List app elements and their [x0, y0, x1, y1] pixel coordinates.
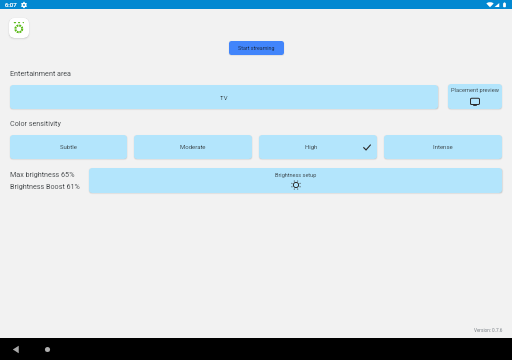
staticText: Color sensitivity: [10, 119, 61, 127]
staticText: Version: 0.7.6: [474, 328, 503, 334]
button[interactable]: Brightness setup: [89, 168, 502, 193]
button[interactable]: Intense: [384, 135, 502, 159]
staticText: Entertainment area: [10, 69, 72, 77]
button[interactable]: TV: [10, 85, 438, 109]
button[interactable]: Back: [11, 345, 20, 354]
staticText: Start streaming: [238, 45, 275, 51]
button[interactable]: Subtle: [10, 135, 127, 159]
staticText: Intense: [433, 143, 453, 150]
button[interactable]: App logo: [9, 18, 29, 38]
staticText: Brightness setup: [275, 172, 317, 178]
button[interactable]: Home: [43, 345, 52, 354]
staticText: Max brightness 65%: [10, 170, 75, 178]
staticText: High: [305, 143, 318, 150]
staticText: Brightness Boost 61%: [10, 182, 80, 190]
button[interactable]: Start streaming: [229, 41, 284, 55]
button[interactable]: Placement preview: [448, 84, 502, 109]
button[interactable]: High: [259, 135, 377, 159]
staticText: Subtle: [60, 143, 77, 150]
staticText: TV: [220, 94, 228, 101]
staticText: 6:07: [5, 1, 17, 8]
staticText: Moderate: [180, 143, 206, 150]
button[interactable]: Moderate: [134, 135, 252, 159]
staticText: Placement preview: [451, 87, 499, 94]
